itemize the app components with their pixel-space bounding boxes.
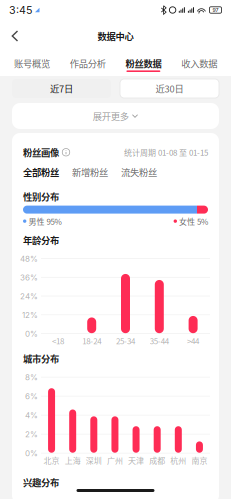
- button[interactable]: 收入数据: [171, 52, 227, 76]
- button[interactable]: 近30日: [120, 79, 219, 98]
- staticText: 0%: [25, 449, 38, 457]
- staticText: 女性 5%: [177, 217, 208, 226]
- staticText: 城市分布: [23, 353, 59, 364]
- staticText: 南京: [191, 456, 207, 465]
- button[interactable]: 近7日: [12, 79, 111, 98]
- staticText: 8%: [25, 373, 38, 381]
- staticText: 粉丝画像: [23, 147, 59, 157]
- staticText: 年龄分布: [23, 235, 59, 245]
- staticText: 6%: [25, 392, 38, 400]
- staticText: 粉丝数据: [125, 58, 161, 68]
- staticText: 97: [212, 7, 218, 13]
- staticText: 35-44: [150, 336, 169, 345]
- staticText: 兴趣分布: [23, 477, 59, 487]
- staticText: 广州: [107, 456, 123, 465]
- staticText: 展开更多: [93, 111, 129, 121]
- staticText: 数据中心: [97, 31, 133, 41]
- staticText: 作品分析: [70, 58, 106, 68]
- staticText: 2%: [25, 430, 38, 438]
- staticText: 近30日: [155, 83, 183, 94]
- staticText: 男性 95%: [26, 217, 61, 226]
- staticText: 北京: [44, 456, 60, 465]
- staticText: 3:45: [9, 4, 32, 15]
- staticText: 成都: [149, 456, 165, 465]
- staticText: 杭州: [170, 456, 186, 465]
- button[interactable]: 粉丝数据: [115, 52, 171, 76]
- staticText: 24%: [20, 292, 38, 300]
- staticText: 18-24: [82, 336, 101, 345]
- button[interactable]: 作品分析: [60, 52, 116, 76]
- staticText: 统计周期 01-08 至 01-15: [124, 148, 208, 157]
- staticText: 0%: [25, 330, 38, 338]
- button[interactable]: 全部粉丝: [23, 166, 59, 177]
- button[interactable]: 流失粉丝: [121, 166, 157, 177]
- staticText: 性别分布: [23, 191, 59, 202]
- staticText: 近7日: [50, 83, 73, 94]
- staticText: 上海: [65, 456, 81, 465]
- staticText: 账号概览: [14, 58, 50, 68]
- button[interactable]: 新增粉丝: [72, 166, 108, 177]
- staticText: 流失粉丝: [121, 166, 157, 177]
- staticText: 深圳: [86, 456, 102, 465]
- button[interactable]: 展开更多: [12, 103, 219, 129]
- staticText: <18: [52, 336, 64, 345]
- button[interactable]: 账号概览: [4, 52, 60, 76]
- button[interactable]: Back: [0, 23, 30, 49]
- staticText: >44: [187, 336, 199, 345]
- staticText: 36%: [20, 273, 38, 282]
- staticText: 全部粉丝: [23, 166, 59, 177]
- staticText: 新增粉丝: [72, 166, 108, 177]
- staticText: 天津: [128, 456, 144, 465]
- staticText: 12%: [22, 311, 38, 319]
- staticText: 收入数据: [181, 58, 217, 68]
- staticText: 48%: [20, 255, 38, 263]
- staticText: 4%: [25, 411, 38, 419]
- staticText: 25-34: [116, 336, 135, 345]
